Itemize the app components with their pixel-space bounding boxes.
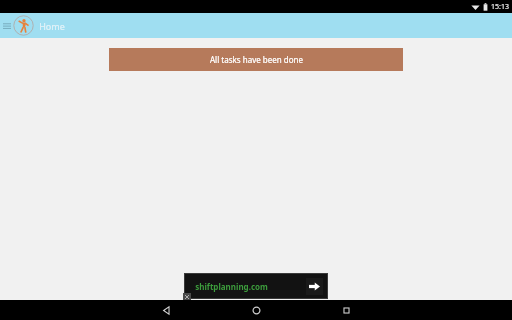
staticText: 15:13 bbox=[491, 2, 509, 12]
staticText: shiftplanning.com bbox=[195, 281, 268, 292]
button[interactable]: Back bbox=[136, 300, 196, 320]
staticText: Home bbox=[39, 20, 65, 32]
button[interactable]: Open navigation menu bbox=[1, 13, 12, 38]
button[interactable]: Open advertisement bbox=[308, 280, 321, 293]
button[interactable]: Close ad bbox=[183, 293, 191, 301]
button[interactable]: All tasks have been done bbox=[109, 48, 403, 71]
button[interactable]: App logo bbox=[13, 15, 34, 36]
button[interactable]: Recent apps bbox=[316, 300, 376, 320]
button[interactable]: shiftplanning.com bbox=[185, 274, 327, 298]
button[interactable]: Home bbox=[226, 300, 286, 320]
staticText: All tasks have been done bbox=[210, 54, 303, 65]
